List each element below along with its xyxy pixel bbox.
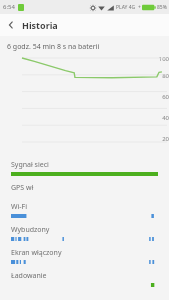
staticText: PLAY 4G — [116, 4, 136, 11]
staticText: 6:54 — [3, 3, 15, 11]
staticText: 80 — [149, 72, 169, 80]
staticText: Wybudzony — [11, 225, 50, 235]
staticText: 85% — [157, 4, 167, 11]
staticText: Ekran włączony — [11, 248, 62, 258]
staticText: Ładowanie — [11, 271, 47, 281]
button[interactable]: Ekran włączony — [0, 244, 169, 267]
button[interactable]: Sygnał sieci — [0, 156, 169, 179]
staticText: 40 — [149, 114, 169, 122]
staticText: 100 — [149, 55, 169, 63]
button[interactable]: GPS wł — [0, 179, 169, 198]
staticText: 20 — [149, 135, 169, 143]
button[interactable]: Back — [0, 14, 22, 36]
button[interactable]: Wybudzony — [0, 221, 169, 244]
staticText: 60 — [149, 93, 169, 101]
button[interactable]: Wi-Fi — [0, 198, 169, 221]
staticText: Wi-Fi — [11, 202, 28, 212]
button[interactable]: Ładowanie — [0, 267, 169, 290]
staticText: Sygnał sieci — [11, 160, 49, 170]
staticText: 6 godz. 54 min 8 s na baterii — [7, 42, 100, 52]
staticText: + — [138, 4, 141, 11]
staticText: GPS wł — [11, 183, 34, 193]
staticText: Historia — [22, 19, 58, 31]
